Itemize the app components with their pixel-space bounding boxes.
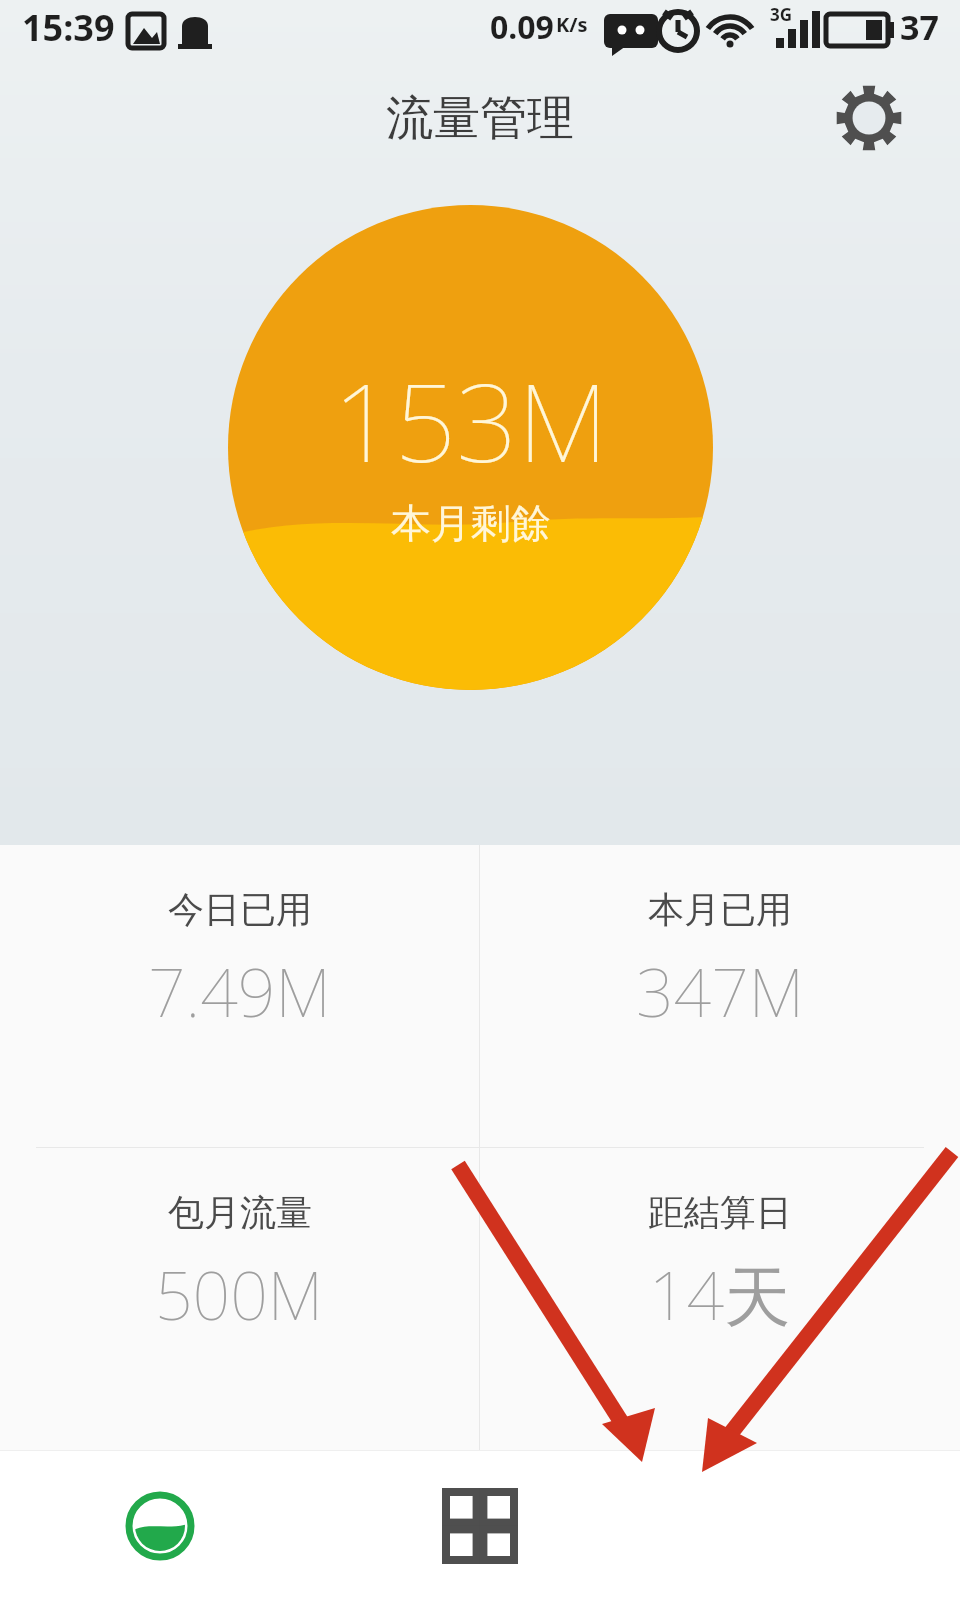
staticText: 153M <box>333 347 609 494</box>
staticText: 今日已用 <box>168 887 312 932</box>
staticText: K/s <box>556 11 588 38</box>
button[interactable]: 本月已用 <box>480 845 960 1147</box>
button[interactable]: Settings <box>826 75 912 161</box>
button[interactable]: 包月流量 <box>0 1148 479 1450</box>
staticText: 包月流量 <box>168 1190 312 1235</box>
button[interactable]: Data usage <box>0 1451 320 1600</box>
staticText: 3G <box>770 3 793 26</box>
button[interactable]: 距結算日 <box>480 1148 960 1450</box>
staticText: 流量管理 <box>386 89 574 148</box>
button[interactable]: 今日已用 <box>0 845 479 1147</box>
staticText: 0.09 <box>490 5 554 49</box>
staticText: 本月剩餘 <box>391 498 551 548</box>
staticText: 本月已用 <box>648 887 792 932</box>
staticText: 7.49M <box>148 946 331 1036</box>
staticText: 347M <box>636 946 805 1036</box>
staticText: 500M <box>155 1249 324 1339</box>
staticText: 37 <box>900 4 939 50</box>
staticText: 15:39 <box>22 3 115 52</box>
button[interactable]: Apps <box>320 1451 640 1600</box>
staticText: 14天 <box>649 1249 791 1339</box>
staticText: 距結算日 <box>648 1190 792 1235</box>
